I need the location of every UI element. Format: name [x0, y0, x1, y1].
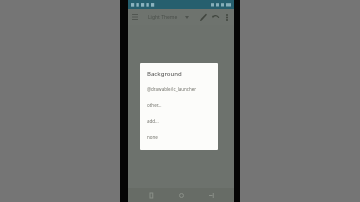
button[interactable]: Undo [209, 11, 221, 23]
staticText: Background [147, 70, 182, 78]
staticText: @drawable/ic_launcher [147, 86, 197, 92]
button[interactable]: Back [146, 189, 158, 201]
button[interactable]: Edit [197, 11, 209, 23]
button[interactable]: none [147, 134, 211, 140]
staticText: other... [147, 102, 162, 108]
button[interactable]: @drawable/ic_launcher [147, 86, 211, 92]
staticText: none [147, 134, 158, 140]
button[interactable]: Menu [128, 10, 142, 24]
button[interactable]: add... [147, 118, 211, 124]
button[interactable]: Select theme [183, 13, 191, 21]
button[interactable]: Recents [205, 189, 217, 201]
staticText: add... [147, 118, 159, 124]
button[interactable]: More options [221, 12, 232, 23]
button[interactable]: other... [147, 102, 211, 108]
staticText: Light Theme [148, 14, 178, 21]
button[interactable]: Home [175, 189, 187, 201]
